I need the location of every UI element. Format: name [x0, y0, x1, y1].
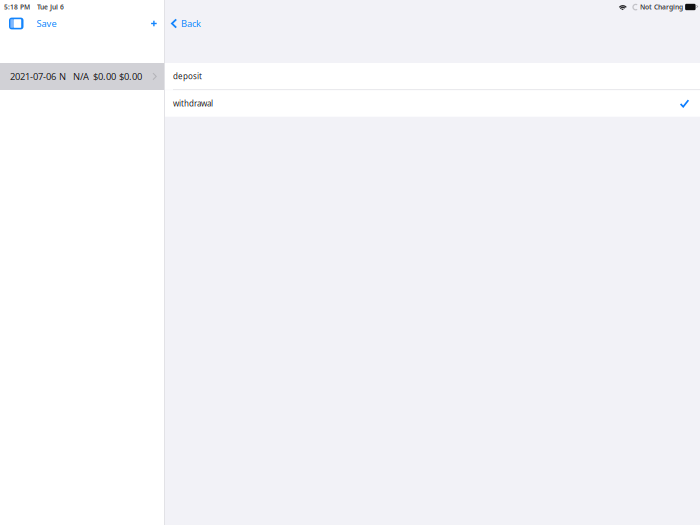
staticText: deposit	[173, 71, 202, 81]
staticText: $0.00	[93, 70, 116, 83]
button[interactable]: 2021-07-06	[0, 63, 164, 90]
staticText: Back	[181, 17, 201, 30]
button[interactable]: Save	[31, 12, 61, 35]
staticText: Not Charging	[640, 3, 683, 11]
button[interactable]: withdrawal	[165, 90, 700, 117]
staticText: N	[59, 70, 66, 83]
button[interactable]: Toggle Sidebar	[5, 13, 27, 33]
staticText: Save	[36, 17, 56, 30]
staticText: Tue Jul 6	[37, 3, 64, 11]
staticText: withdrawal	[173, 98, 213, 109]
staticText: $0.00	[119, 70, 142, 83]
button[interactable]: deposit	[165, 63, 700, 89]
button[interactable]: Add	[146, 14, 162, 33]
staticText: 5:18 PM	[4, 3, 30, 11]
button[interactable]: Back	[166, 11, 206, 36]
staticText: N/A	[73, 70, 89, 83]
staticText: 2021-07-06	[10, 70, 56, 83]
